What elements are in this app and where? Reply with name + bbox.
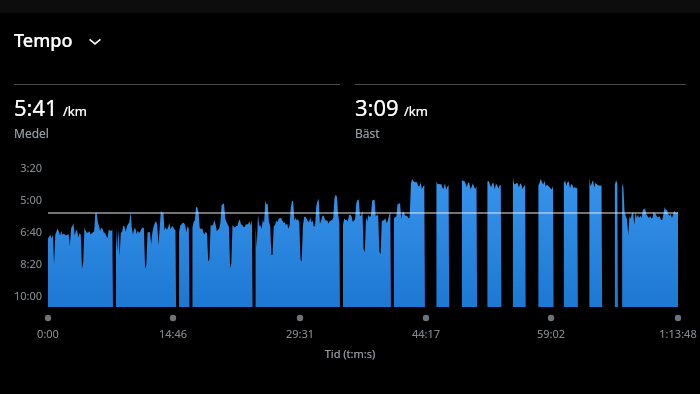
button[interactable]: Tempo (14, 28, 109, 53)
staticText: 6:40 (0, 224, 42, 239)
staticText: 59:02 (511, 326, 591, 341)
button[interactable]: 5:41 (14, 92, 194, 141)
staticText: 10:00 (0, 288, 42, 303)
staticText: 0:00 (8, 326, 88, 341)
staticText: 29:31 (260, 326, 340, 341)
staticText: 5:00 (0, 192, 42, 207)
staticText: 44:17 (386, 326, 466, 341)
staticText: /km (404, 102, 428, 120)
staticText: Bäst (355, 125, 380, 141)
staticText: 3:09 (355, 92, 399, 122)
staticText: Tempo (14, 28, 73, 53)
other: Expand metric selector (87, 33, 103, 49)
staticText: Medel (14, 125, 49, 141)
staticText: /km (63, 102, 87, 120)
staticText: 5:41 (14, 92, 58, 122)
staticText: 14:46 (133, 326, 213, 341)
staticText: Tid (t:m:s) (0, 346, 700, 361)
staticText: 8:20 (0, 256, 42, 271)
staticText: 1:13:48 (638, 326, 700, 341)
staticText: 3:20 (0, 160, 42, 175)
button[interactable]: 3:09 (355, 92, 535, 141)
